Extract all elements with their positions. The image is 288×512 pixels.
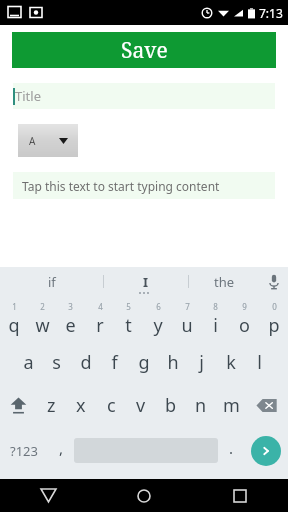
staticText: z	[47, 393, 56, 418]
staticText: c	[107, 393, 116, 418]
staticText: 8	[213, 301, 218, 312]
staticText: v	[136, 393, 146, 418]
button[interactable]: Save	[12, 32, 276, 68]
staticText: ?123	[10, 442, 38, 460]
button[interactable]: 5	[114, 298, 143, 341]
button[interactable]: if	[0, 267, 103, 296]
button[interactable]: Voice input	[260, 267, 288, 296]
staticText: m	[223, 393, 240, 418]
button[interactable]: .	[218, 427, 244, 474]
staticText: f	[111, 350, 118, 375]
button[interactable]: Tap this text to start typing content	[13, 172, 275, 199]
staticText: 7:13	[259, 5, 283, 21]
staticText: g	[138, 350, 150, 375]
button[interactable]: 2	[28, 298, 56, 341]
button[interactable]: the	[189, 267, 260, 296]
staticText: i	[213, 313, 218, 338]
staticText: a	[23, 350, 34, 375]
button[interactable]: 0	[259, 298, 288, 341]
button[interactable]: I	[104, 267, 188, 296]
button[interactable]: Title	[13, 83, 275, 109]
staticText: d	[80, 350, 92, 375]
staticText: 3	[68, 301, 73, 312]
button[interactable]: d	[71, 341, 100, 384]
button[interactable]: k	[216, 341, 245, 384]
staticText: ,	[59, 438, 64, 458]
button[interactable]: z	[36, 384, 66, 427]
button[interactable]: l	[245, 341, 274, 384]
button[interactable]: x	[66, 384, 96, 427]
button[interactable]: 8	[201, 298, 230, 341]
staticText: 1	[12, 301, 17, 312]
staticText: h	[167, 350, 179, 375]
button[interactable]: a	[14, 341, 42, 384]
button[interactable]: n	[186, 384, 216, 427]
button[interactable]: A	[18, 124, 78, 157]
staticText: Title	[15, 87, 41, 105]
button[interactable]: ,	[48, 427, 74, 474]
button[interactable]: Backspace	[246, 384, 288, 427]
staticText: n	[195, 393, 207, 418]
staticText: j	[199, 350, 204, 375]
staticText: x	[76, 393, 86, 418]
button[interactable]: m	[216, 384, 246, 427]
staticText: r	[96, 313, 104, 338]
button[interactable]: f	[100, 341, 129, 384]
button[interactable]: Home	[96, 479, 192, 512]
button[interactable]: Shift	[0, 384, 36, 427]
button[interactable]: Enter	[244, 427, 288, 474]
staticText: Save	[121, 36, 168, 65]
staticText: if	[48, 273, 56, 291]
staticText: 2	[40, 301, 45, 312]
staticText: u	[181, 313, 193, 338]
staticText: o	[239, 313, 250, 338]
staticText: I	[143, 273, 149, 291]
button[interactable]: g	[129, 341, 158, 384]
staticText: 0	[272, 301, 277, 312]
staticText: k	[226, 350, 236, 375]
staticText: 4	[98, 301, 103, 312]
button[interactable]: Back	[0, 479, 96, 512]
button[interactable]: b	[156, 384, 186, 427]
staticText: t	[125, 313, 132, 338]
staticText: Tap this text to start typing content	[22, 178, 220, 194]
staticText: 9	[242, 301, 247, 312]
staticText: q	[8, 313, 20, 338]
staticText: p	[268, 313, 280, 338]
button[interactable]: 7	[172, 298, 201, 341]
button[interactable]: Recents	[192, 479, 288, 512]
staticText: w	[35, 313, 50, 338]
button[interactable]: j	[187, 341, 216, 384]
button[interactable]: 3	[56, 298, 85, 341]
button[interactable]: c	[96, 384, 126, 427]
button[interactable]: h	[158, 341, 187, 384]
button[interactable]: ?123	[0, 427, 48, 474]
button[interactable]: 4	[85, 298, 114, 341]
staticText: 6	[156, 301, 161, 312]
button[interactable]: v	[126, 384, 156, 427]
staticText: the	[214, 273, 235, 291]
staticText: y	[153, 313, 163, 338]
staticText: 7	[185, 301, 190, 312]
staticText: e	[65, 313, 76, 338]
staticText: A	[29, 134, 36, 148]
staticText: b	[165, 393, 177, 418]
button[interactable]: 9	[230, 298, 259, 341]
staticText: l	[257, 350, 262, 375]
button[interactable]: s	[42, 341, 71, 384]
staticText: s	[52, 350, 61, 375]
staticText: .	[229, 438, 234, 458]
button[interactable]: 6	[143, 298, 172, 341]
button[interactable]: 1	[0, 298, 28, 341]
staticText: 5	[126, 301, 131, 312]
